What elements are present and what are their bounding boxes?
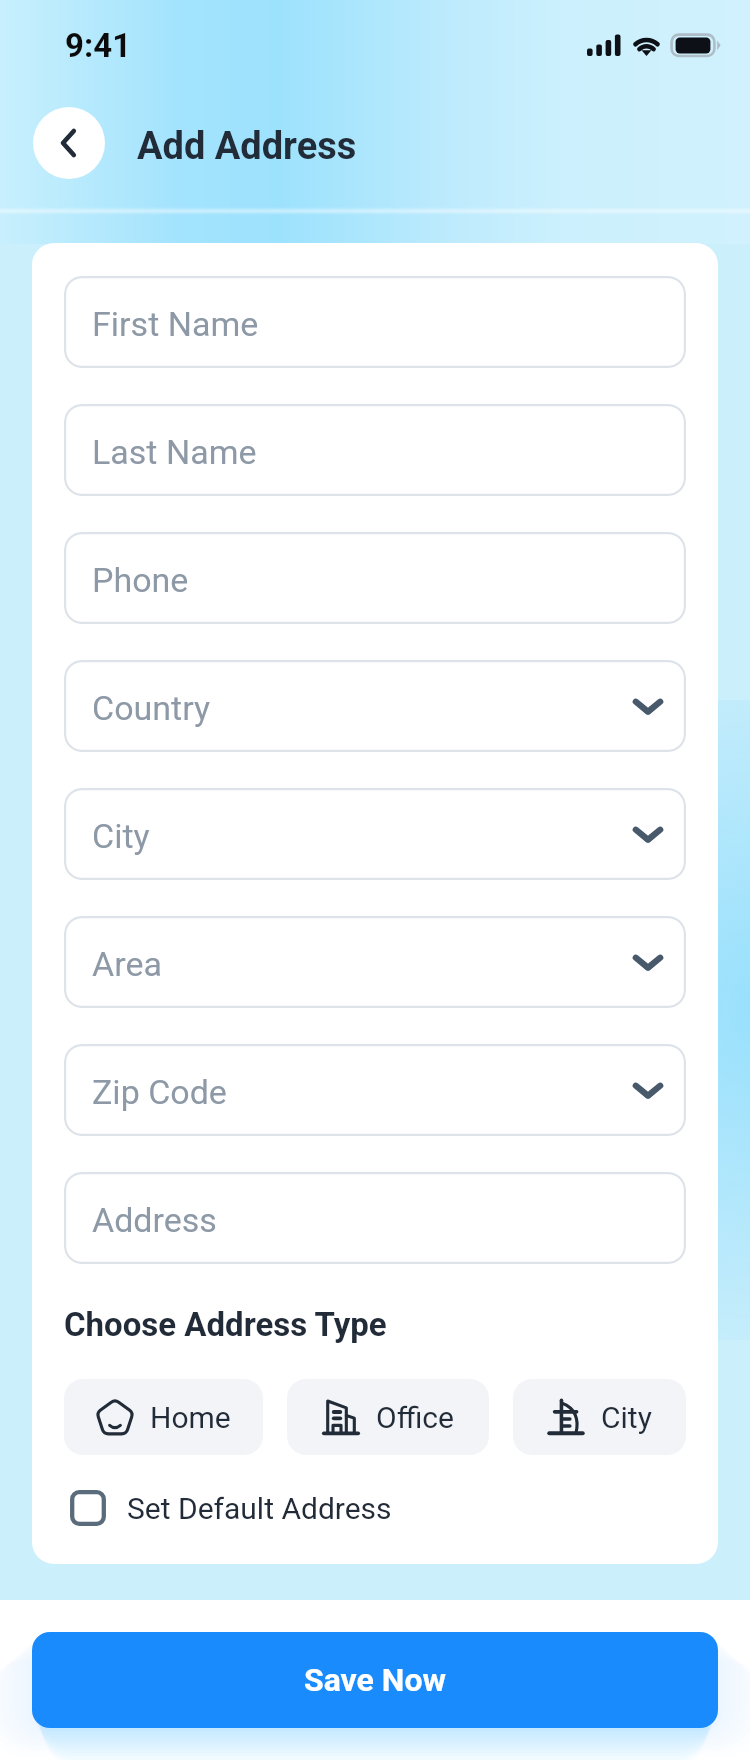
staticText: Area: [92, 944, 162, 984]
button[interactable]: Address: [64, 1172, 686, 1264]
button[interactable]: Save Now: [32, 1632, 718, 1728]
staticText: Country: [92, 688, 211, 728]
button[interactable]: Phone: [64, 532, 686, 624]
button[interactable]: Area: [64, 916, 686, 1008]
button[interactable]: Home: [64, 1379, 263, 1455]
staticText: Phone: [92, 560, 189, 600]
staticText: Add Address: [137, 124, 357, 169]
staticText: Choose Address Type: [64, 1305, 387, 1344]
button[interactable]: Set Default Address: [66, 1482, 392, 1534]
staticText: City: [601, 1400, 652, 1435]
button[interactable]: First Name: [64, 276, 686, 368]
button[interactable]: Last Name: [64, 404, 686, 496]
button[interactable]: Country: [64, 660, 686, 752]
staticText: Save Now: [304, 1661, 446, 1699]
staticText: Address: [92, 1200, 217, 1240]
staticText: Set Default Address: [127, 1491, 392, 1526]
staticText: First Name: [92, 304, 259, 344]
button[interactable]: Office: [287, 1379, 489, 1455]
staticText: Office: [376, 1400, 454, 1435]
button[interactable]: Back: [33, 107, 105, 179]
staticText: Home: [150, 1400, 231, 1435]
staticText: Last Name: [92, 432, 257, 472]
staticText: City: [92, 816, 150, 856]
button[interactable]: City: [64, 788, 686, 880]
staticText: 9:41: [65, 26, 132, 65]
staticText: Zip Code: [92, 1072, 227, 1112]
button[interactable]: City: [513, 1379, 686, 1455]
button[interactable]: Zip Code: [64, 1044, 686, 1136]
